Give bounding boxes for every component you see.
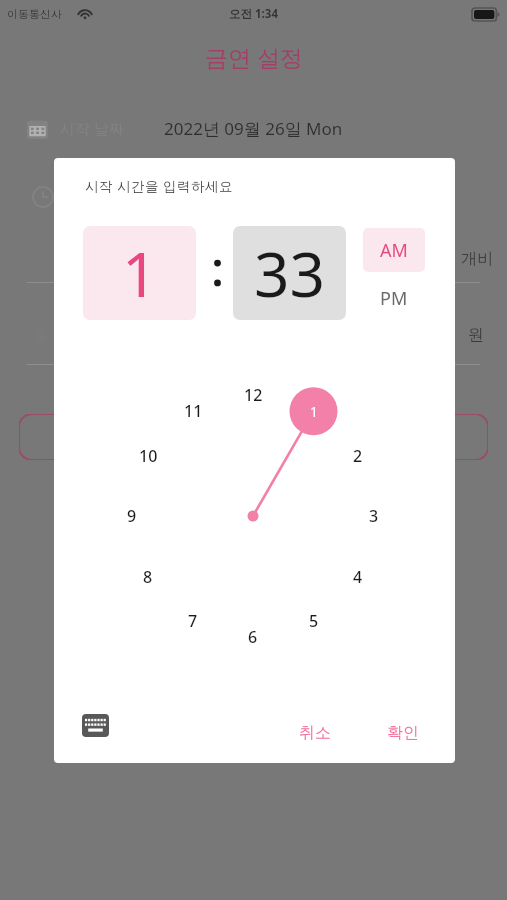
staticText: 취소: [299, 723, 331, 743]
button[interactable]: 취소: [283, 714, 347, 752]
staticText: 9: [127, 505, 137, 527]
staticText: 2022년 09월 26일 Mon: [164, 117, 343, 140]
staticText: 오전 1:34: [229, 6, 278, 22]
staticText: 12: [244, 384, 263, 406]
staticText: 33: [254, 231, 325, 315]
staticText: 확인: [387, 723, 419, 743]
staticText: 1: [310, 402, 319, 421]
staticText: 5: [309, 610, 319, 632]
staticText: 시작 시간을 입력하세요: [85, 177, 234, 195]
staticText: 8: [143, 566, 153, 588]
staticText: 개비: [461, 249, 493, 269]
staticText: 2: [353, 445, 363, 467]
staticText: 이동통신사: [7, 7, 62, 21]
button[interactable]: 확인: [371, 714, 435, 752]
staticText: 7: [188, 610, 198, 632]
staticText: 11: [184, 400, 203, 422]
button[interactable]: [19, 414, 488, 460]
staticText: 1: [122, 231, 158, 315]
staticText: PM: [380, 286, 408, 311]
staticText: AM: [380, 238, 408, 263]
button[interactable]: AM: [363, 228, 425, 272]
button[interactable]: PM: [363, 276, 425, 320]
button[interactable]: Clock dial: [95, 358, 411, 674]
staticText: 4: [353, 566, 363, 588]
staticText: 금연 설정: [205, 41, 303, 72]
button[interactable]: 33: [233, 226, 346, 320]
staticText: 원: [468, 325, 484, 345]
staticText: 6: [248, 626, 258, 648]
staticText: 10: [139, 445, 158, 467]
button[interactable]: Switch to keyboard input: [76, 707, 114, 743]
staticText: 3: [369, 505, 379, 527]
button[interactable]: 1: [83, 226, 196, 320]
